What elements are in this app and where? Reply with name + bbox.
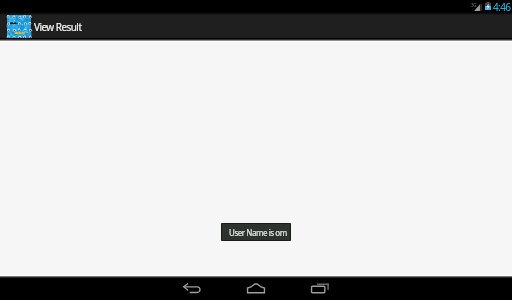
button[interactable]: Back [160,277,224,299]
staticText: 4:46 [493,0,511,12]
button[interactable]: Home [224,277,288,299]
button[interactable]: View Result [0,12,90,38]
staticText: View Result [34,20,82,34]
staticText: 3G [471,2,477,8]
staticText: User Name is om [229,227,287,238]
button[interactable]: Recent apps [288,277,352,299]
